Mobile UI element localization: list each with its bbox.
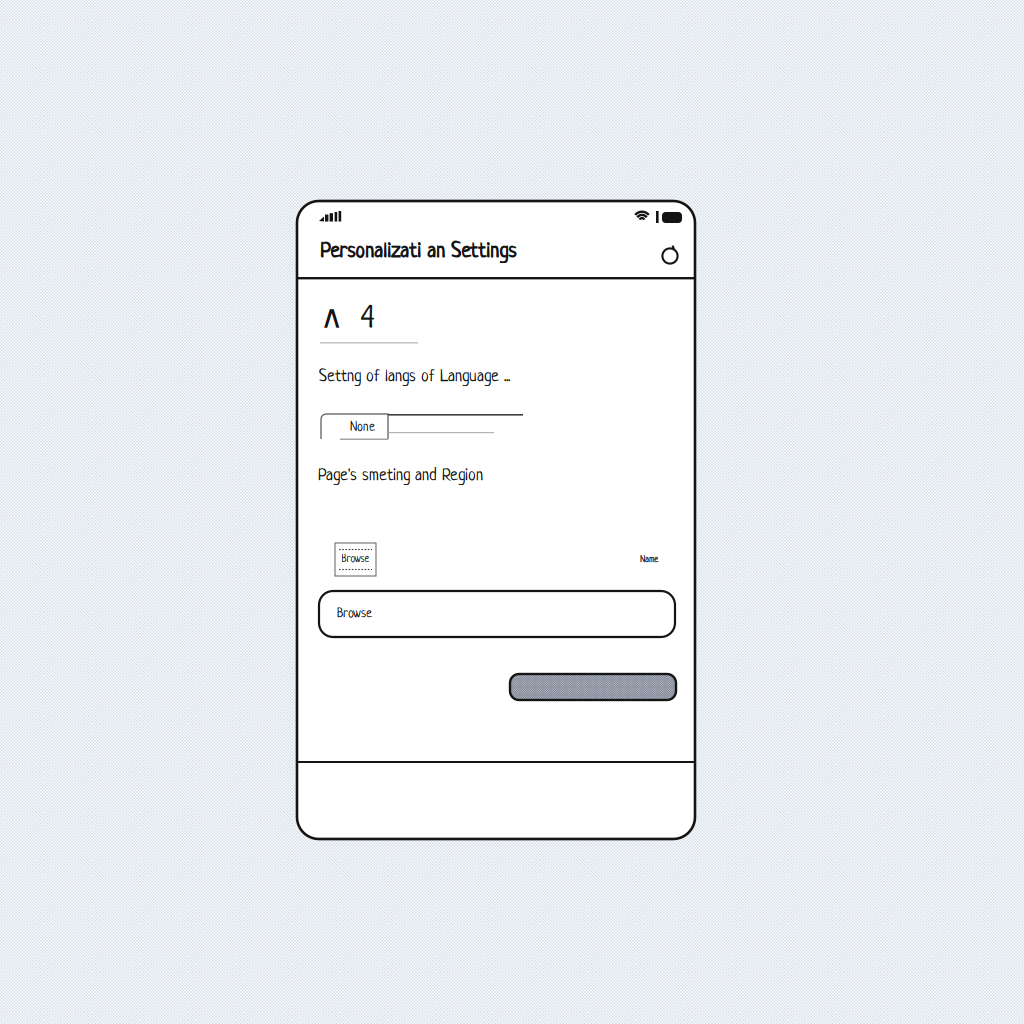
staticText: None [350, 420, 375, 434]
staticText: ∧ 4 [320, 298, 375, 337]
staticText: Page's smeting and Region [318, 467, 483, 485]
button[interactable]: Profile [651, 234, 690, 278]
staticText: Name [640, 555, 658, 565]
staticText: Personalizati an Settings [320, 241, 516, 263]
button[interactable]: None [320, 413, 389, 440]
staticText: Browse [337, 607, 372, 621]
staticText: Browse [341, 554, 369, 565]
button[interactable]: Submit [510, 674, 676, 700]
button[interactable]: Browse [319, 591, 675, 637]
staticText: Settng of langs of Language ... [319, 368, 510, 386]
